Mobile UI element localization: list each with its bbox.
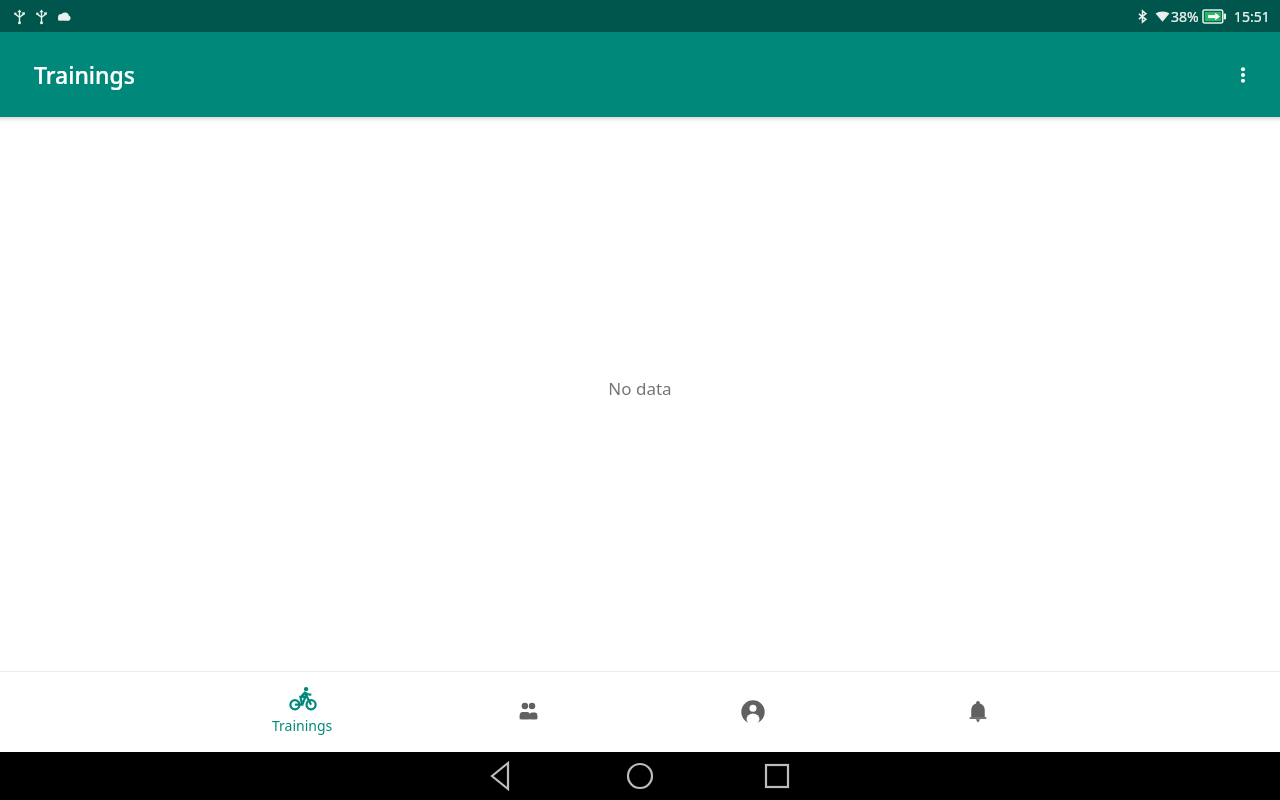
staticText: 38% — [1171, 7, 1199, 26]
button[interactable]: Trainings — [190, 672, 415, 752]
button[interactable]: Friends — [415, 672, 640, 752]
staticText: 15:51 — [1234, 7, 1270, 26]
button[interactable]: Profile — [640, 672, 865, 752]
staticText: Trainings — [272, 716, 333, 735]
staticText: No data — [608, 377, 672, 400]
button[interactable]: Notifications — [865, 672, 1090, 752]
staticText: Trainings — [34, 59, 135, 90]
button[interactable]: More options — [1220, 52, 1266, 98]
